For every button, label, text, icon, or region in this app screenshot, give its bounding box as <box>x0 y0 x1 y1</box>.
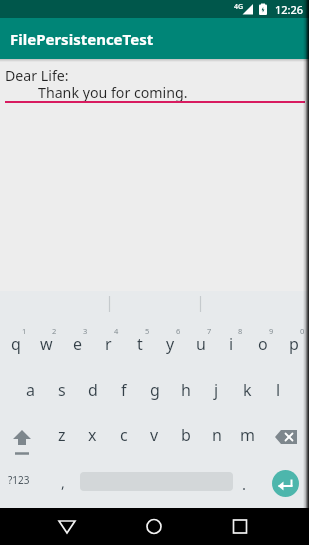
staticText: 5 <box>145 326 150 336</box>
staticText: v <box>150 424 159 446</box>
button[interactable]: j <box>201 366 232 414</box>
button[interactable]: z <box>46 411 77 459</box>
staticText: i <box>229 333 234 355</box>
staticText: 2 <box>52 326 57 336</box>
staticText: m <box>240 424 255 446</box>
staticText: 3 <box>83 326 88 336</box>
button[interactable]: i <box>216 322 247 365</box>
button[interactable]: o <box>247 322 278 365</box>
button[interactable]: e <box>62 322 93 365</box>
staticText: u <box>196 333 206 355</box>
staticText: c <box>120 424 128 446</box>
staticText: FilePersistenceTest <box>10 29 154 49</box>
button[interactable]: n <box>201 411 232 459</box>
staticText: f <box>121 379 127 401</box>
button[interactable]: x <box>77 411 108 459</box>
staticText: j <box>214 379 219 401</box>
staticText: , <box>61 473 65 492</box>
staticText: r <box>105 333 112 355</box>
button[interactable]: w <box>31 322 62 365</box>
button[interactable]: r <box>93 322 124 365</box>
button[interactable]: y <box>155 322 186 365</box>
staticText: 4G <box>234 2 244 12</box>
staticText: g <box>150 379 160 401</box>
staticText: z <box>58 424 66 446</box>
staticText: 4 <box>114 326 119 336</box>
staticText: k <box>243 379 252 401</box>
staticText: . <box>242 474 247 494</box>
staticText: d <box>88 379 98 401</box>
staticText: 0 <box>300 326 305 336</box>
staticText: s <box>58 379 66 401</box>
staticText: 6 <box>176 326 181 336</box>
button[interactable]: p <box>278 322 309 365</box>
staticText: 8 <box>238 326 243 336</box>
button[interactable] <box>136 508 172 545</box>
staticText: Thank you for coming. <box>38 83 188 102</box>
staticText: b <box>181 424 191 446</box>
button[interactable] <box>0 411 46 459</box>
button[interactable]: g <box>139 366 170 414</box>
button[interactable]: f <box>108 366 139 414</box>
staticText: 1 <box>22 326 27 336</box>
button[interactable]: m <box>232 411 263 459</box>
staticText: l <box>276 379 281 401</box>
button[interactable] <box>272 470 299 497</box>
button[interactable]: Dear Life: <box>0 59 309 109</box>
staticText: x <box>88 424 97 446</box>
staticText: p <box>289 333 299 355</box>
staticText: a <box>26 379 35 401</box>
button[interactable]: b <box>170 411 201 459</box>
staticText: h <box>181 379 191 401</box>
staticText: q <box>11 333 21 355</box>
button[interactable]: l <box>263 366 294 414</box>
button[interactable]: ?123 <box>0 457 38 503</box>
button[interactable]: t <box>124 322 155 365</box>
staticText: 7 <box>207 326 212 336</box>
button[interactable]: s <box>46 366 77 414</box>
button[interactable]: v <box>139 411 170 459</box>
button[interactable]: a <box>15 366 46 414</box>
button[interactable] <box>267 411 309 459</box>
button[interactable]: h <box>170 366 201 414</box>
button[interactable]: u <box>185 322 216 365</box>
button[interactable]: c <box>108 411 139 459</box>
staticText: e <box>73 333 83 355</box>
button[interactable]: d <box>77 366 108 414</box>
button[interactable] <box>49 508 85 545</box>
staticText: o <box>258 333 268 355</box>
staticText: 9 <box>269 326 274 336</box>
button[interactable]: q <box>0 322 31 365</box>
button[interactable]: k <box>232 366 263 414</box>
staticText: t <box>137 333 143 355</box>
staticText: n <box>212 424 222 446</box>
staticText: w <box>40 333 53 355</box>
staticText: 12:26 <box>275 2 304 17</box>
button[interactable]: . <box>232 462 256 511</box>
button[interactable]: , <box>48 462 78 511</box>
staticText: ?123 <box>8 473 30 487</box>
staticText: Dear Life: <box>5 66 69 85</box>
button[interactable] <box>222 508 258 545</box>
staticText: y <box>166 333 175 355</box>
